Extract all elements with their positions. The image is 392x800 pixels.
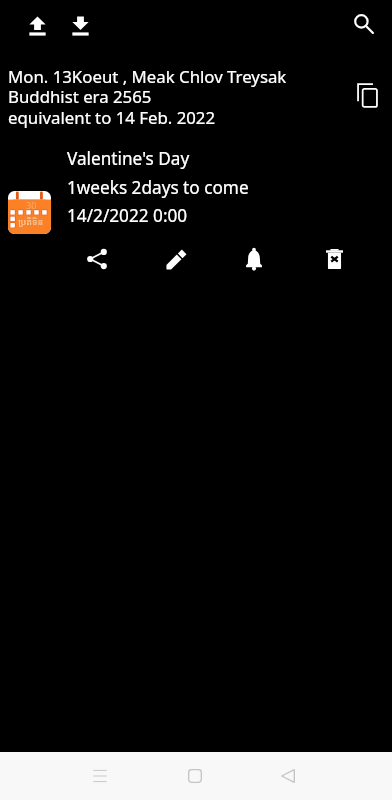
button[interactable]: Copy [350, 78, 384, 112]
staticText: ប្រតិទិន [18, 215, 44, 227]
button[interactable] [0, 140, 392, 236]
staticText: 30 [26, 199, 37, 211]
button[interactable]: Export [63, 9, 97, 43]
button[interactable]: Import [20, 9, 54, 43]
button[interactable]: Reminder [237, 242, 271, 276]
button[interactable]: Share [80, 242, 114, 276]
button[interactable]: Home [171, 752, 219, 800]
staticText: Mon. 13Koeut , Meak Chlov Treysak Buddhi… [8, 65, 287, 129]
button[interactable]: Search [346, 6, 380, 40]
button[interactable]: Back [264, 752, 312, 800]
button[interactable]: Recents [76, 752, 124, 800]
button[interactable]: Edit [159, 242, 193, 276]
button[interactable]: Delete [317, 242, 351, 276]
staticText: Valentine's Day 1weeks 2days to come 14/… [67, 147, 249, 227]
